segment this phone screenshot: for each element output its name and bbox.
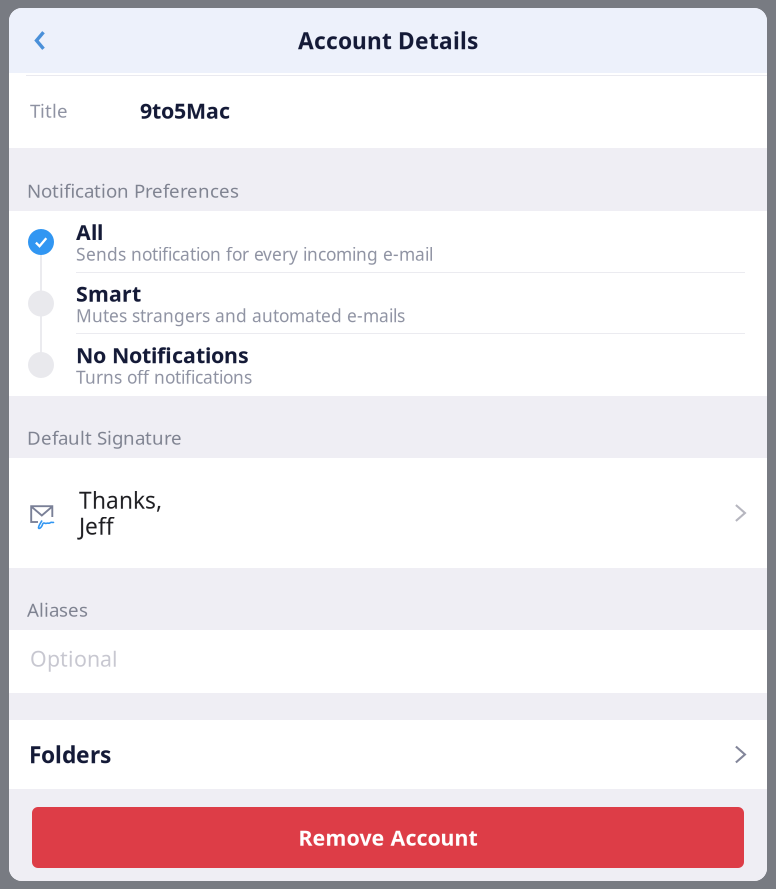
staticText: No Notifications — [76, 341, 249, 369]
staticText: 9to5Mac — [140, 96, 230, 125]
staticText: Default Signature — [27, 425, 182, 450]
button[interactable]: Thanks, — [9, 458, 767, 568]
button[interactable]: Folders — [9, 720, 767, 789]
staticText: Sends notification for every incoming e-… — [76, 242, 433, 265]
button[interactable]: Remove Account — [32, 807, 744, 868]
staticText: Account Details — [298, 25, 478, 55]
staticText: Thanks, — [79, 485, 162, 515]
staticText: Mutes strangers and automated e-mails — [76, 304, 405, 327]
staticText: Folders — [29, 739, 111, 769]
button[interactable]: No Notifications — [9, 334, 767, 396]
staticText: Optional — [30, 644, 118, 673]
staticText: Jeff — [79, 511, 114, 541]
staticText: Turns off notifications — [76, 365, 252, 388]
button[interactable]: All — [9, 211, 767, 273]
staticText: Notification Preferences — [27, 178, 239, 203]
staticText: Smart — [76, 279, 141, 308]
staticText: Aliases — [27, 597, 88, 622]
staticText: Remove Account — [298, 823, 477, 852]
staticText: All — [76, 218, 103, 246]
staticText: Title — [30, 98, 68, 123]
button[interactable]: Back — [9, 8, 71, 73]
button[interactable]: Smart — [9, 273, 767, 334]
